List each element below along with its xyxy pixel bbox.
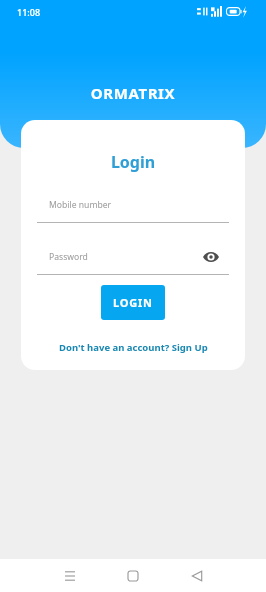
button[interactable]: Home [115,559,151,592]
button[interactable]: LOGIN [101,285,165,320]
button[interactable]: Show password [201,247,221,267]
button[interactable]: Recent apps [52,559,88,592]
staticText: LOGIN [113,295,153,310]
staticText: Don't have an account? Sign Up [59,341,208,354]
button[interactable]: Back [179,559,215,592]
staticText: Login [21,151,245,173]
button[interactable]: Password [37,246,229,266]
button[interactable]: Don't have an account? Sign Up [53,338,214,357]
staticText: Password [49,251,88,263]
staticText: ORMATRIX [0,83,266,103]
staticText: 11:08 [17,6,41,18]
staticText: Mobile number [49,199,112,211]
button[interactable]: Mobile number [37,194,229,206]
